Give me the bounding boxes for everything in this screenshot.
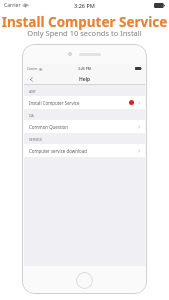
staticText: Common Question xyxy=(29,124,68,130)
button[interactable]: Home xyxy=(76,272,93,289)
staticText: SERVICE xyxy=(29,137,43,142)
staticText: Carrier xyxy=(4,2,21,9)
staticText: 3:26 PM xyxy=(78,66,91,71)
staticText: QA xyxy=(29,113,34,118)
button[interactable]: Install Computer Service xyxy=(24,96,145,109)
staticText: 3:26 PM xyxy=(74,2,95,9)
staticText: Carrier xyxy=(27,67,38,71)
staticText: Computer service download xyxy=(29,148,87,154)
staticText: Install Computer Service xyxy=(29,100,80,106)
staticText: Help xyxy=(79,76,91,83)
button[interactable]: Computer service download xyxy=(24,144,145,157)
staticText: Only Spend 10 seconds to Install xyxy=(0,28,169,38)
staticText: ANT xyxy=(29,89,36,94)
button[interactable]: Back xyxy=(24,73,38,85)
button[interactable]: Common Question xyxy=(24,120,145,133)
staticText: Install Computer Service xyxy=(0,13,169,31)
